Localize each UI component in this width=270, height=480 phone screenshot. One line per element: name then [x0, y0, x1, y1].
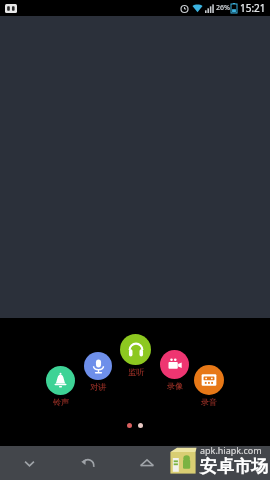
button[interactable]: Home [117, 446, 176, 480]
staticText: 监听 [128, 367, 144, 377]
staticText: 铃声 [53, 397, 69, 407]
button[interactable]: 对讲 [78, 352, 118, 392]
button[interactable]: Back [58, 446, 117, 480]
staticText: apk.hiapk.com [200, 444, 262, 456]
staticText: 对讲 [90, 382, 106, 392]
staticText: 录音 [201, 397, 217, 407]
staticText: 录像 [167, 381, 183, 391]
button[interactable]: 铃声 [40, 366, 81, 407]
button[interactable]: Hide keyboard [0, 446, 58, 480]
button[interactable]: 监听 [114, 334, 157, 377]
button[interactable]: 录像 [154, 350, 195, 391]
staticText: 26% [216, 3, 230, 13]
button[interactable]: 录音 [188, 365, 230, 407]
staticText: 15:21 [240, 1, 266, 15]
staticText: 安卓市场 [200, 456, 268, 477]
